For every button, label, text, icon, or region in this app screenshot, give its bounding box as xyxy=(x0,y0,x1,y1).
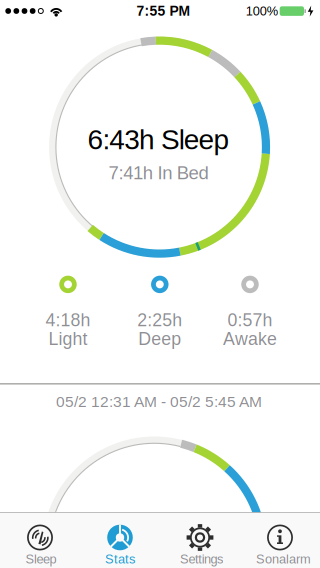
staticText: 7:41h In Bed xyxy=(109,162,208,183)
staticText: Awake xyxy=(223,329,277,349)
staticText: Sonalarm xyxy=(256,552,311,566)
staticText: Light xyxy=(48,329,87,349)
staticText: 100% xyxy=(246,4,278,18)
staticText: 0:57h xyxy=(227,310,272,330)
button[interactable]: Sleep xyxy=(0,512,80,568)
button[interactable]: Settings xyxy=(160,512,240,568)
staticText: 05/2 12:31 AM - 05/2 5:45 AM xyxy=(56,393,262,410)
button[interactable]: Stats xyxy=(80,512,160,568)
staticText: 6:43h Sleep xyxy=(87,124,229,155)
staticText: 4:18h xyxy=(45,310,90,330)
staticText: 7:55 PM xyxy=(136,3,190,19)
staticText: Sleep xyxy=(25,552,57,566)
staticText: Stats xyxy=(105,552,135,566)
staticText: 2:25h xyxy=(137,310,182,330)
staticText: Settings xyxy=(180,552,223,566)
button[interactable]: Sonalarm xyxy=(240,512,320,568)
staticText: Deep xyxy=(138,329,181,349)
